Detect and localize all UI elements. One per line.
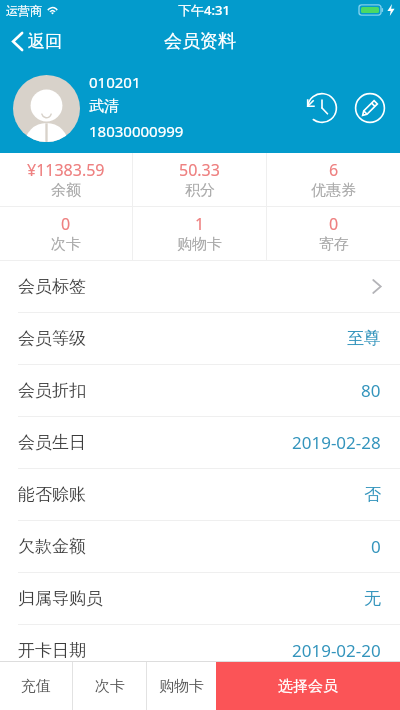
staticText: 寄存: [319, 235, 349, 254]
button[interactable]: ¥11383.59: [0, 153, 132, 206]
button[interactable]: 1: [133, 207, 266, 260]
staticText: 能否赊账: [18, 484, 86, 505]
staticText: 会员标签: [18, 276, 86, 297]
button[interactable]: 选择会员: [216, 662, 400, 710]
staticText: 欠款金额: [18, 536, 86, 557]
staticText: 2019-02-28: [292, 431, 381, 454]
button[interactable]: 会员折扣: [0, 365, 400, 416]
button[interactable]: History: [305, 91, 339, 125]
button[interactable]: 能否赊账: [0, 469, 400, 520]
button[interactable]: 次卡: [73, 662, 146, 710]
staticText: 18030000999: [89, 121, 184, 141]
staticText: 否: [364, 484, 381, 505]
staticText: 归属导购员: [18, 588, 103, 609]
staticText: 会员折扣: [18, 380, 86, 401]
button[interactable]: 0: [267, 207, 400, 260]
staticText: 运营商: [6, 3, 42, 18]
staticText: 购物卡: [159, 677, 204, 696]
staticText: 会员生日: [18, 432, 86, 453]
button[interactable]: 会员生日: [0, 417, 400, 468]
button[interactable]: 充值: [0, 662, 72, 710]
staticText: 武清: [89, 97, 119, 116]
staticText: 无: [364, 588, 381, 609]
button[interactable]: 50.33: [133, 153, 266, 206]
button[interactable]: Edit: [353, 91, 387, 125]
button[interactable]: 返回: [0, 27, 74, 56]
staticText: 会员等级: [18, 328, 86, 349]
staticText: 0: [329, 213, 339, 235]
staticText: 充值: [21, 677, 51, 696]
staticText: 会员资料: [164, 30, 236, 53]
button[interactable]: 欠款金额: [0, 521, 400, 572]
button[interactable]: 购物卡: [147, 662, 216, 710]
staticText: 余额: [51, 181, 81, 200]
staticText: 优惠券: [311, 181, 356, 200]
staticText: 选择会员: [278, 677, 338, 696]
button[interactable]: 归属导购员: [0, 573, 400, 624]
button[interactable]: 会员标签: [0, 261, 400, 312]
staticText: 2019-02-20: [292, 639, 381, 662]
staticText: 下午4:31: [178, 1, 230, 19]
staticText: 010201: [89, 72, 141, 92]
staticText: 购物卡: [177, 235, 222, 254]
staticText: 次卡: [95, 677, 125, 696]
button[interactable]: 开卡日期: [0, 625, 400, 676]
button[interactable]: 6: [267, 153, 400, 206]
button[interactable]: 会员等级: [0, 313, 400, 364]
staticText: 50.33: [179, 159, 220, 181]
staticText: 0: [371, 535, 381, 558]
staticText: 至尊: [347, 328, 381, 349]
button[interactable]: 0: [0, 207, 132, 260]
staticText: 返回: [28, 31, 62, 52]
staticText: 0: [61, 213, 71, 235]
staticText: 80: [361, 379, 381, 402]
staticText: 1: [195, 213, 205, 235]
staticText: 积分: [185, 181, 215, 200]
staticText: 6: [329, 159, 339, 181]
staticText: ¥11383.59: [27, 159, 105, 181]
staticText: 开卡日期: [18, 640, 86, 661]
staticText: 次卡: [51, 235, 81, 254]
